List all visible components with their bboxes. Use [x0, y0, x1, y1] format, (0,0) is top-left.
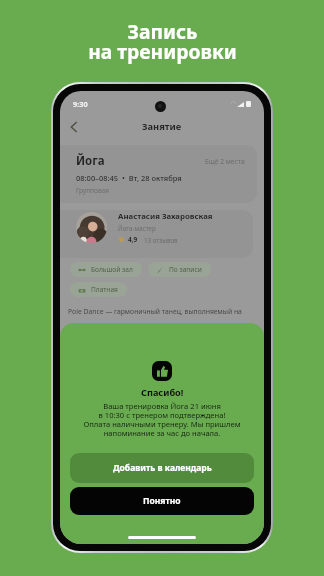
staticText: Занятие [142, 120, 182, 133]
staticText: Спасибо! [141, 386, 184, 399]
staticText: Анастасия Захаровская [118, 211, 213, 222]
staticText: Групповая [76, 186, 109, 195]
staticText: Понятно [143, 495, 181, 507]
button[interactable]: Большой зал [70, 262, 142, 277]
staticText: Платная [91, 285, 118, 294]
button[interactable]: По записи [148, 262, 211, 277]
staticText: Йога-мастер [118, 224, 156, 232]
staticText: Йога [76, 153, 105, 169]
staticText: Ещё 2 места [205, 157, 245, 166]
staticText: Большой зал [91, 265, 133, 274]
staticText: Добавить в календарь [113, 462, 212, 474]
staticText: на тренировки [88, 38, 237, 64]
staticText: 08:00–08:45 • Вт, 28 октября [76, 173, 182, 183]
staticText: По записи [169, 265, 202, 274]
staticText: Запись [127, 18, 198, 44]
staticText: 4,9 [128, 235, 138, 244]
staticText: Pole Dance — гармоничный танец, выполняе… [68, 307, 242, 316]
button[interactable]: Назад [64, 117, 84, 137]
staticText: 9:30 [73, 99, 88, 109]
staticText: 13 отзывов [144, 236, 178, 244]
button[interactable]: Платная [70, 282, 127, 297]
button[interactable]: Добавить в календарь [70, 453, 254, 483]
staticText: Ваша тренировка Йога 21 июня в 10:30 с т… [83, 401, 241, 438]
button[interactable]: Понятно [70, 487, 254, 515]
